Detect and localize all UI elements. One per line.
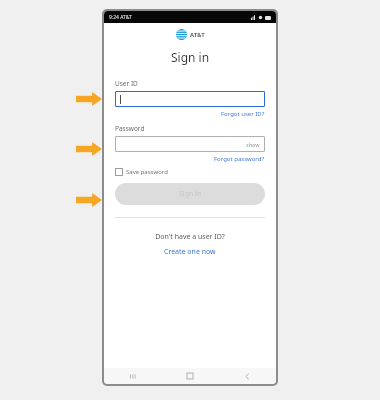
button[interactable]: Create one now bbox=[164, 247, 216, 257]
staticText: Don't have a user ID? bbox=[115, 232, 265, 242]
staticText: User ID bbox=[115, 79, 138, 88]
button[interactable]: Forgot user ID? bbox=[221, 110, 265, 118]
button[interactable]: show bbox=[246, 141, 260, 148]
staticText: Password bbox=[115, 124, 145, 133]
button[interactable] bbox=[115, 91, 265, 107]
button[interactable]: Save password bbox=[115, 168, 168, 176]
button[interactable]: Back bbox=[240, 369, 254, 383]
staticText: AT&T bbox=[190, 31, 205, 39]
other: AT&T logo bbox=[176, 29, 187, 40]
button[interactable]: Sign in bbox=[115, 183, 265, 205]
button[interactable]: show bbox=[115, 136, 265, 152]
staticText: Sign in bbox=[104, 49, 276, 65]
button[interactable]: Home bbox=[183, 369, 197, 383]
staticText: Sign in bbox=[179, 189, 202, 199]
staticText: 9:24 AT&T bbox=[109, 14, 132, 21]
staticText: Save password bbox=[126, 168, 168, 176]
button[interactable]: Forgot password? bbox=[214, 155, 265, 163]
button[interactable]: Recent apps bbox=[126, 369, 140, 383]
